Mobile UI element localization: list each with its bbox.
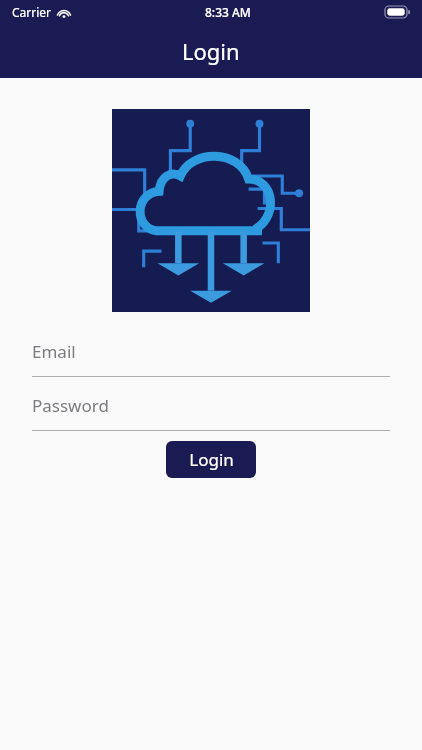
staticText: Carrier — [12, 4, 52, 20]
button[interactable]: Password — [32, 377, 390, 431]
other: Wi-Fi signal — [57, 7, 71, 18]
button[interactable]: Email — [32, 326, 390, 377]
staticText: Email — [32, 340, 76, 363]
staticText: 8:33 AM — [205, 4, 251, 20]
other: Battery — [385, 6, 410, 18]
staticText: Login — [182, 36, 240, 66]
staticText: Password — [32, 394, 109, 417]
staticText: Login — [189, 448, 234, 471]
button[interactable]: Login — [166, 441, 256, 478]
